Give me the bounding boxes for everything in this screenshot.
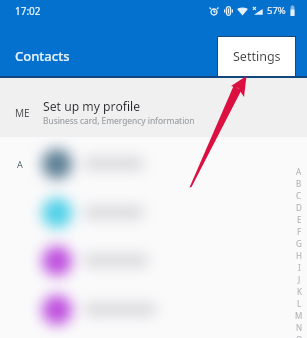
button[interactable]: Settings (218, 37, 295, 77)
staticText: A (17, 158, 23, 170)
staticText: Contacts (15, 47, 70, 65)
staticText: A (296, 166, 302, 177)
button[interactable]: ME (0, 77, 307, 137)
staticText: J (298, 274, 301, 285)
staticText: Settings (233, 48, 281, 65)
staticText: N (296, 322, 303, 333)
staticText: ME (15, 106, 30, 120)
staticText: D (296, 202, 302, 213)
staticText: Set up my profile (43, 98, 141, 115)
staticText: O (296, 334, 303, 338)
button[interactable] (33, 140, 169, 189)
staticText: F (297, 226, 302, 237)
staticText: 57% (267, 4, 286, 17)
staticText: B (296, 178, 302, 189)
staticText: 17:02 (15, 4, 41, 18)
staticText: E (297, 214, 302, 225)
staticText: H (296, 250, 302, 261)
button[interactable] (33, 189, 169, 238)
staticText: M (295, 310, 303, 321)
staticText: I (298, 262, 301, 273)
staticText: L (297, 298, 302, 309)
button[interactable] (33, 237, 169, 286)
staticText: C (296, 190, 302, 201)
staticText: K (297, 286, 302, 297)
staticText: Business card, Emergency information (43, 115, 195, 126)
staticText: G (296, 238, 302, 249)
button[interactable] (33, 286, 169, 335)
